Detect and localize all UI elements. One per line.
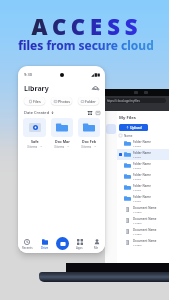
- staticText: Document Name: [133, 206, 157, 210]
- button[interactable]: Files: [24, 97, 45, 105]
- button[interactable]: Cloud sync: [91, 84, 100, 93]
- button[interactable]: Photos: [51, 97, 72, 105]
- staticText: ACCESS: [31, 11, 143, 41]
- staticText: Files: [33, 99, 41, 104]
- button[interactable]: [106, 124, 116, 134]
- button[interactable]: Recents: [18, 239, 36, 250]
- staticText: 3 Pages: [133, 243, 142, 246]
- staticText: Library: [24, 84, 49, 94]
- staticText: Recents: [22, 246, 33, 250]
- staticText: 3 items: [133, 155, 142, 158]
- staticText: ···: [67, 145, 70, 149]
- button[interactable]: Date Created: [24, 110, 54, 115]
- staticText: Name: [124, 134, 133, 138]
- button[interactable]: Document Name: [117, 226, 169, 237]
- button[interactable]: Me: [88, 239, 105, 250]
- button[interactable]: Folder Name: [117, 182, 169, 193]
- staticText: 3 Pages: [133, 221, 142, 224]
- staticText: Folder Name: [133, 151, 151, 155]
- staticText: Folder Name: [133, 162, 151, 166]
- button[interactable]: Folder Name: [117, 138, 169, 149]
- staticText: 3 items: [54, 145, 65, 149]
- button[interactable]: Doc Feb: [78, 118, 100, 149]
- button[interactable]: Safe: [23, 118, 46, 149]
- staticText: https://cloud.app/myfiles: [106, 99, 140, 103]
- staticText: Doc Feb: [82, 139, 97, 144]
- staticText: Drive: [41, 246, 49, 250]
- staticText: 3 items: [133, 188, 142, 191]
- staticText: Safe: [31, 139, 39, 144]
- staticText: Folder Name: [133, 184, 151, 188]
- button[interactable]: Document Name: [117, 237, 169, 248]
- button[interactable]: Document Name: [117, 215, 169, 226]
- staticText: Photos: [58, 99, 70, 104]
- button[interactable]: Folder Name: [117, 149, 169, 160]
- staticText: files from secure cloud: [18, 37, 154, 53]
- staticText: Folder Name: [133, 173, 151, 177]
- staticText: 3 items: [133, 166, 142, 169]
- staticText: Folder Name: [133, 140, 151, 144]
- button[interactable]: List view: [95, 110, 100, 115]
- staticText: Document Name: [133, 239, 157, 243]
- staticText: My Files: [119, 115, 136, 121]
- staticText: Folder Name: [133, 195, 151, 199]
- staticText: 3 items: [133, 144, 142, 147]
- staticText: Date Created: [24, 110, 50, 115]
- button[interactable]: Grid view: [87, 110, 92, 115]
- button[interactable]: Apps: [71, 239, 88, 250]
- button[interactable]: Folder Name: [117, 193, 169, 204]
- button[interactable]: Scan document: [56, 237, 69, 250]
- staticText: 3 items: [133, 177, 142, 180]
- button[interactable]: Drive: [36, 239, 54, 250]
- button[interactable]: Document Name: [117, 204, 169, 215]
- button[interactable]: Doc Mar: [51, 118, 73, 149]
- staticText: ···: [94, 145, 97, 149]
- staticText: 3 items: [81, 145, 92, 149]
- staticText: Document Name: [133, 217, 157, 221]
- button[interactable]: Upload: [119, 124, 148, 131]
- staticText: 9:30: [24, 72, 32, 77]
- staticText: ···: [40, 145, 43, 149]
- staticText: Doc Mar: [55, 139, 70, 144]
- staticText: Apps: [76, 246, 83, 250]
- staticText: Upload: [130, 125, 142, 130]
- staticText: Document Name: [133, 228, 157, 232]
- button[interactable]: Folder Name: [117, 171, 169, 182]
- staticText: 3 items: [27, 145, 38, 149]
- button[interactable]: Folder: [78, 97, 99, 105]
- staticText: 3 Pages: [133, 232, 142, 235]
- staticText: Me: [94, 246, 99, 250]
- staticText: 3 Pages: [133, 210, 142, 213]
- button[interactable]: Folder Name: [117, 160, 169, 171]
- staticText: 3 items: [133, 199, 142, 202]
- staticText: Folder: [85, 99, 96, 104]
